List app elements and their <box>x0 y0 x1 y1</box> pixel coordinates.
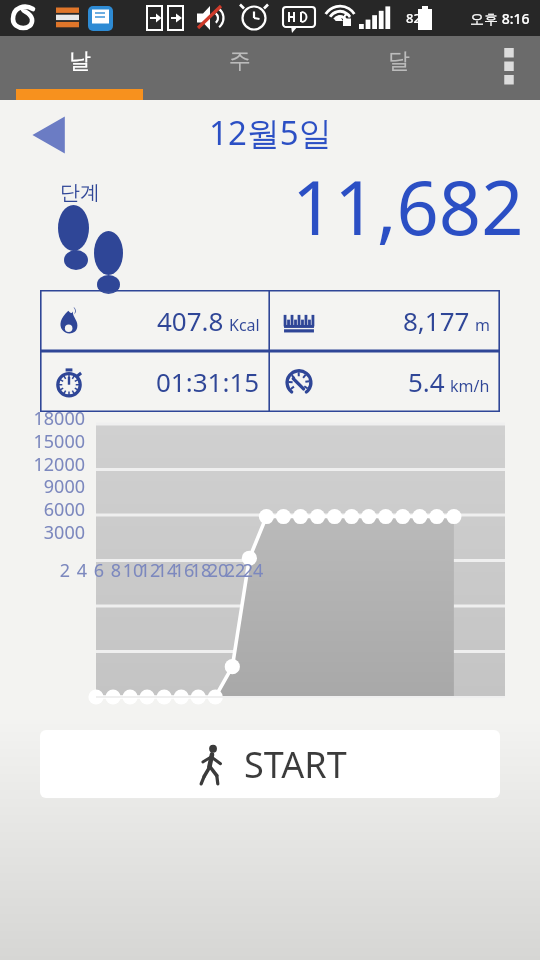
staticText: 달 <box>388 47 410 75</box>
staticText: 12월5일 <box>209 110 332 155</box>
staticText: 16 <box>164 558 204 583</box>
staticText: 3000 <box>0 520 85 545</box>
staticText: 날 <box>69 47 91 75</box>
button[interactable]: 주 <box>160 36 319 100</box>
staticText: 8,177 <box>403 303 470 338</box>
button[interactable]: 날 <box>0 36 160 100</box>
staticText: 9000 <box>0 474 85 499</box>
staticText: 6 <box>79 558 119 583</box>
staticText: 24 <box>233 558 273 583</box>
staticText: 11,682 <box>292 156 524 257</box>
staticText: m <box>475 314 490 336</box>
staticText: 8 <box>96 558 136 583</box>
staticText: 14 <box>147 558 187 583</box>
staticText: 12 <box>130 558 170 583</box>
staticText: 82% <box>406 9 432 27</box>
button[interactable]: 8,177 <box>270 290 500 351</box>
staticText: 18000 <box>0 406 85 431</box>
staticText: 오후 8:16 <box>470 9 530 28</box>
button[interactable]: 01:31:15 <box>40 351 270 412</box>
staticText: km/h <box>450 375 490 397</box>
staticText: 01:31:15 <box>156 364 260 399</box>
staticText: 2 <box>45 558 85 583</box>
button[interactable]: More options <box>478 36 540 100</box>
button[interactable]: 달 <box>319 36 478 100</box>
staticText: 10 <box>113 558 153 583</box>
staticText: 주 <box>229 47 251 75</box>
button[interactable]: Previous day <box>20 108 78 162</box>
staticText: 22 <box>215 558 255 583</box>
staticText: 18 <box>181 558 221 583</box>
staticText: 15000 <box>0 429 85 454</box>
staticText: 4 <box>62 558 102 583</box>
button[interactable]: 407.8 <box>40 290 270 351</box>
staticText: 20 <box>198 558 238 583</box>
staticText: START <box>244 740 347 789</box>
staticText: 407.8 <box>157 303 224 338</box>
staticText: 단계 <box>60 180 100 205</box>
staticText: Kcal <box>229 314 260 336</box>
staticText: 6000 <box>0 497 85 522</box>
button[interactable]: START <box>40 730 500 798</box>
staticText: 12000 <box>0 452 85 477</box>
staticText: 5.4 <box>408 364 445 399</box>
button[interactable]: 5.4 <box>270 351 500 412</box>
